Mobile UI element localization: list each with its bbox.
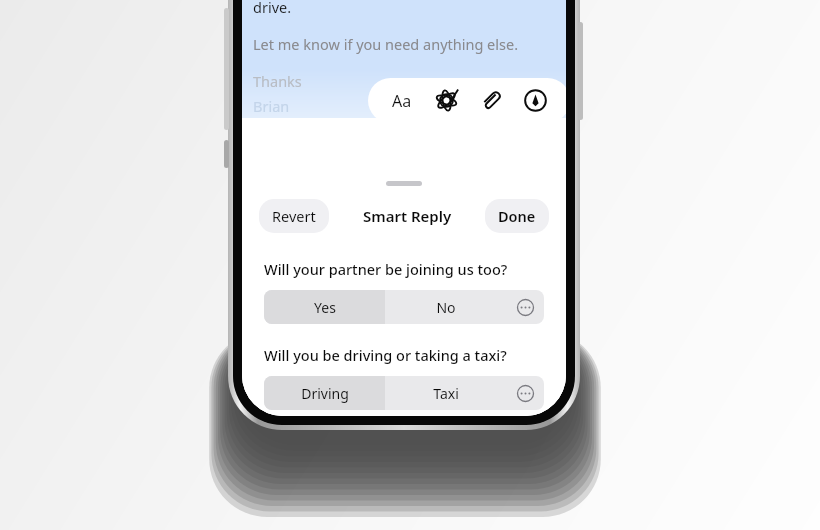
staticText: Driving (301, 384, 349, 403)
button[interactable]: Revert (259, 199, 329, 233)
staticText: Brian (253, 96, 290, 116)
button[interactable]: Done (485, 199, 549, 233)
staticText: Thanks (253, 71, 302, 91)
staticText: Yes (314, 298, 336, 317)
staticText: Will your partner be joining us too? (264, 259, 508, 279)
button[interactable]: Markup (513, 78, 558, 123)
button[interactable]: Aa (380, 78, 424, 123)
button[interactable]: Taxi (385, 376, 506, 410)
button[interactable]: More options (506, 290, 544, 324)
staticText: Aa (392, 90, 412, 112)
button[interactable]: No (385, 290, 506, 324)
staticText: Thanks for the invite! We’ll be there an… (253, 0, 549, 17)
staticText: No (436, 298, 456, 317)
staticText: Smart Reply (363, 206, 452, 226)
button[interactable]: More options (506, 376, 544, 410)
button[interactable]: Yes (264, 290, 385, 324)
staticText: Done (498, 206, 536, 226)
button[interactable]: Attach (468, 78, 513, 123)
staticText: Taxi (433, 384, 459, 403)
button[interactable]: Effects (424, 78, 468, 123)
staticText: Revert (272, 206, 316, 226)
button[interactable]: Driving (264, 376, 385, 410)
staticText: Let me know if you need anything else. (253, 34, 519, 54)
staticText: Will you be driving or taking a taxi? (264, 345, 507, 365)
